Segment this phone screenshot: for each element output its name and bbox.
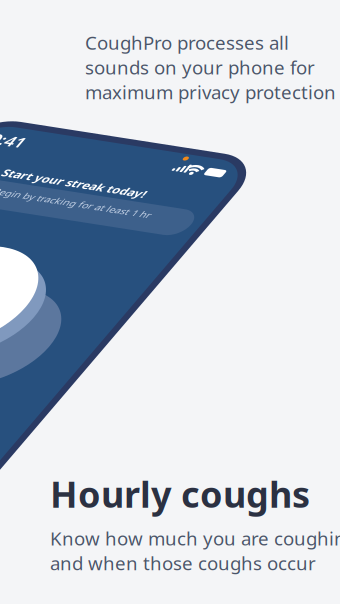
staticText: Start your streak today! — [130, 243, 340, 284]
staticText: 9:41 — [40, 141, 124, 198]
staticText: Know how much you are coughing and when … — [50, 526, 340, 575]
staticText: Hourly coughs — [50, 470, 310, 518]
staticText: CoughPro processes all sounds on your ph… — [85, 30, 336, 104]
